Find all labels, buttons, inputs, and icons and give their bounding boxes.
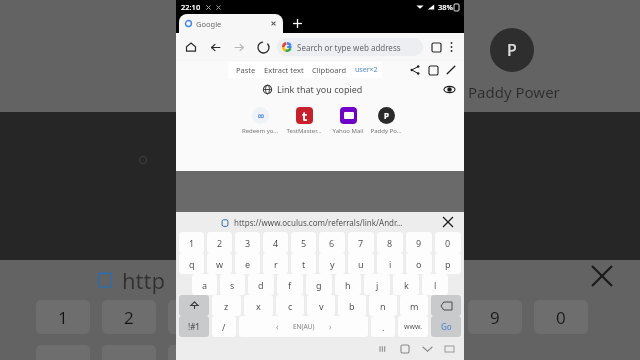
button[interactable]: g (306, 274, 332, 295)
staticText: y (330, 258, 335, 270)
button[interactable]: 0 (435, 232, 461, 253)
button[interactable]: Clipboard (308, 65, 351, 75)
button[interactable]: t (282, 107, 326, 135)
button[interactable]: c (276, 295, 304, 316)
button[interactable]: 6 (319, 232, 345, 253)
button[interactable]: Share (406, 61, 424, 79)
button[interactable]: New tab (288, 14, 307, 33)
button[interactable]: Close tab (270, 20, 277, 27)
staticText: v (319, 300, 324, 312)
button[interactable]: Go (431, 316, 461, 337)
staticText: ∞ (257, 111, 265, 121)
button[interactable]: Yahoo Mail (326, 107, 370, 135)
staticText: P (507, 39, 517, 61)
button[interactable]: More options (444, 40, 458, 54)
button[interactable]: / (212, 316, 236, 337)
button[interactable]: Home (182, 38, 200, 56)
button[interactable]: x (244, 295, 273, 316)
button[interactable]: h (335, 274, 361, 295)
staticText: 2 (124, 306, 134, 329)
button[interactable]: ∞ (238, 107, 282, 135)
button[interactable]: z (212, 295, 241, 316)
staticText: Redeem yo… (238, 127, 282, 135)
staticText: h (345, 279, 351, 291)
staticText: TestMaster… (282, 127, 326, 135)
button[interactable]: p (435, 253, 461, 274)
staticText: 1 (58, 306, 68, 329)
button[interactable]: m (400, 295, 428, 316)
staticText: w (216, 258, 224, 270)
staticText: t (302, 108, 308, 124)
button[interactable]: Shift (179, 295, 209, 316)
staticText: 0 (556, 306, 566, 329)
button[interactable]: Preview (442, 82, 456, 96)
button[interactable]: r (263, 253, 288, 274)
button[interactable]: e (235, 253, 260, 274)
button[interactable]: 7 (348, 232, 374, 253)
staticText: 0 (445, 237, 451, 249)
button[interactable]: q (179, 253, 204, 274)
button[interactable]: . (371, 316, 395, 337)
button[interactable]: i (377, 253, 403, 274)
button[interactable]: Space (239, 316, 368, 337)
button[interactable]: 3 (235, 232, 260, 253)
button[interactable]: s (220, 274, 245, 295)
button[interactable]: Home (394, 338, 416, 360)
button[interactable]: w (207, 253, 232, 274)
button[interactable]: o (406, 253, 432, 274)
staticText: 1 (189, 237, 195, 249)
button[interactable]: Recents (372, 338, 394, 360)
button[interactable]: Symbols (179, 316, 209, 337)
button[interactable]: Reload (254, 38, 272, 56)
staticText: Go (441, 321, 452, 332)
button[interactable]: Dismiss (440, 214, 456, 230)
staticText: 6 (329, 237, 335, 249)
button[interactable]: Paste (232, 65, 260, 75)
button[interactable]: Google (179, 14, 283, 33)
staticText: 9 (416, 237, 422, 249)
button[interactable]: Hide keyboard (416, 338, 438, 360)
button[interactable]: Edit (442, 61, 460, 79)
button[interactable]: 1 (179, 232, 204, 253)
button[interactable]: https://www.oculus.com/referrals/link/An… (221, 217, 403, 228)
button[interactable]: Link that you copied (176, 79, 464, 99)
staticText: Search or type web address (297, 42, 401, 53)
button[interactable]: Copy (424, 61, 442, 79)
button[interactable]: a (192, 274, 217, 295)
staticText: a (202, 279, 208, 291)
button[interactable]: 4 (263, 232, 288, 253)
staticText: o (416, 258, 422, 270)
staticText: ‹ (276, 321, 279, 332)
button[interactable]: j (364, 274, 390, 295)
button[interactable]: u (348, 253, 374, 274)
button[interactable]: 5 (291, 232, 316, 253)
button[interactable]: Forward (230, 38, 248, 56)
button[interactable]: Backspace (431, 295, 461, 316)
button[interactable]: 9 (406, 232, 432, 253)
button[interactable]: v (307, 295, 335, 316)
button[interactable]: k (393, 274, 419, 295)
button[interactable]: Tab switcher (428, 39, 444, 55)
button[interactable]: P (370, 107, 402, 135)
staticText: user×2 (355, 65, 378, 75)
button[interactable]: t (291, 253, 316, 274)
staticText: x (256, 300, 261, 312)
button[interactable]: www. (398, 316, 428, 337)
staticText: 3 (190, 306, 200, 329)
button[interactable]: 8 (377, 232, 403, 253)
button[interactable]: b (338, 295, 366, 316)
button[interactable]: y (319, 253, 345, 274)
button[interactable]: Extract text (260, 65, 308, 75)
button[interactable]: Back (206, 38, 224, 56)
staticText: s (230, 279, 235, 291)
staticText: Paddy Power (370, 127, 402, 135)
button[interactable]: Search or type web address (277, 38, 423, 56)
staticText: u (358, 258, 364, 270)
staticText: Paste (236, 65, 256, 75)
button[interactable]: Keyboard layout (438, 338, 460, 360)
button[interactable]: n (369, 295, 397, 316)
button[interactable]: f (277, 274, 303, 295)
button[interactable]: 2 (207, 232, 232, 253)
button[interactable]: l (422, 274, 448, 295)
button[interactable]: d (248, 274, 274, 295)
